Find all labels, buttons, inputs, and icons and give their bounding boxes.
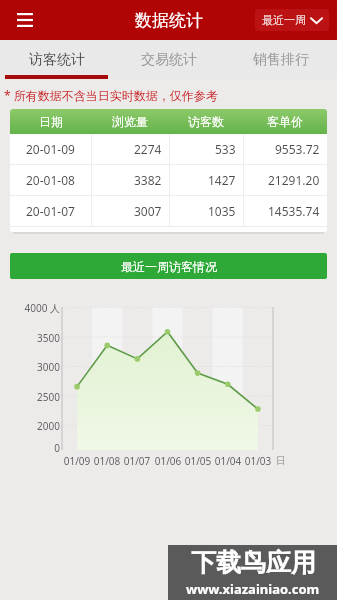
- staticText: 01/03: [241, 454, 275, 468]
- staticText: 01/06: [151, 454, 185, 468]
- staticText: 21291.20: [268, 172, 320, 188]
- staticText: 2274: [134, 141, 162, 157]
- staticText: 访客数: [188, 114, 224, 129]
- staticText: 浏览量: [112, 114, 148, 129]
- staticText: 客单价: [267, 114, 303, 129]
- staticText: 01/05: [181, 454, 215, 468]
- staticText: 日期: [39, 114, 63, 129]
- staticText: 14535.74: [268, 203, 320, 219]
- staticText: 1035: [208, 203, 236, 219]
- button[interactable]: 最近一周: [255, 9, 329, 31]
- staticText: 20-01-09: [26, 141, 75, 157]
- staticText: 4000 人: [0, 301, 60, 315]
- staticText: 1427: [208, 172, 236, 188]
- staticText: 20-01-08: [26, 172, 75, 188]
- button[interactable]: 20-01-07: [10, 196, 327, 226]
- button[interactable]: 20-01-09: [10, 134, 327, 164]
- button[interactable]: 20-01-08: [10, 165, 327, 195]
- staticText: 3382: [134, 172, 162, 188]
- button[interactable]: Menu: [10, 5, 40, 35]
- staticText: 交易统计: [141, 51, 197, 69]
- staticText: 下载鸟应用: [191, 547, 316, 578]
- staticText: 3007: [134, 203, 162, 219]
- staticText: 2000: [0, 419, 60, 433]
- staticText: 日: [276, 454, 286, 467]
- staticText: 最近一周: [262, 13, 306, 27]
- staticText: 3500: [0, 331, 60, 345]
- staticText: * 所有数据不含当日实时数据，仅作参考: [4, 87, 218, 103]
- staticText: 访客统计: [29, 51, 85, 69]
- staticText: 9553.72: [275, 141, 320, 157]
- staticText: 20-01-07: [26, 203, 75, 219]
- staticText: 3000: [0, 360, 60, 374]
- staticText: 销售排行: [253, 51, 309, 69]
- staticText: 2500: [0, 390, 60, 404]
- button[interactable]: 访客统计: [0, 40, 113, 79]
- staticText: 533: [215, 141, 236, 157]
- button[interactable]: 交易统计: [113, 40, 225, 79]
- staticText: www.xiazainiao.com: [186, 580, 320, 598]
- button[interactable]: 最近一周访客情况: [10, 253, 327, 279]
- staticText: 最近一周访客情况: [121, 259, 217, 274]
- staticText: 01/04: [211, 454, 245, 468]
- staticText: 01/09: [60, 454, 94, 468]
- button[interactable]: 销售排行: [225, 40, 337, 79]
- staticText: 01/07: [120, 454, 154, 468]
- staticText: 数据统计: [135, 10, 203, 31]
- staticText: 0: [0, 441, 60, 455]
- staticText: 01/08: [90, 454, 124, 468]
